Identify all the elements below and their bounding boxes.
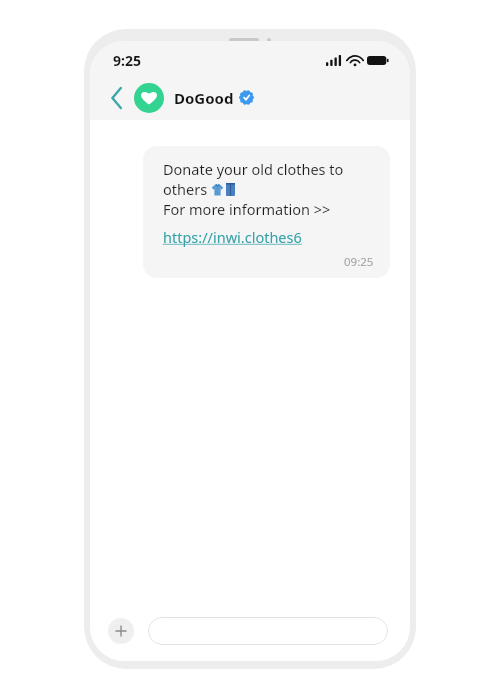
staticText: Donate your old clothes to <box>163 159 344 179</box>
staticText: 9:25 <box>113 51 141 70</box>
staticText: others <box>163 179 211 199</box>
button[interactable]: Back <box>104 85 130 111</box>
staticText: For more information >> <box>163 199 331 219</box>
button[interactable]: https://inwi.clothes6 <box>163 227 302 247</box>
button[interactable]: DoGood profile <box>134 83 164 113</box>
button[interactable]: Message input <box>148 617 388 645</box>
button[interactable]: Add attachment <box>108 618 134 644</box>
button[interactable]: Donate your old clothes to <box>143 146 390 278</box>
staticText: 09:25 <box>344 254 374 270</box>
staticText: DoGood <box>174 88 234 108</box>
